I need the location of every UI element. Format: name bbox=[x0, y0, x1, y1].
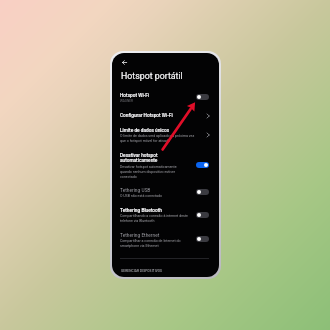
staticText: Tethering Bluetooth bbox=[120, 208, 162, 214]
staticText: Limite de dados únicos bbox=[120, 128, 170, 134]
staticText: Compartilhando a conexão à internet dest… bbox=[120, 214, 188, 223]
staticText: Compartilhar a conexão de Internet do sm… bbox=[120, 239, 181, 248]
staticText: Tethering USB bbox=[120, 188, 151, 194]
button[interactable]: Toggle Desativar hotspot automaticamente bbox=[196, 162, 209, 168]
button[interactable]: Open bbox=[205, 113, 211, 119]
button[interactable] bbox=[112, 150, 219, 168]
staticText: O USB não está conectado bbox=[120, 194, 162, 198]
button[interactable]: Toggle Hotspot Wi-Fi bbox=[196, 94, 209, 100]
button[interactable] bbox=[112, 184, 219, 202]
button[interactable]: Toggle Tethering USB bbox=[196, 189, 209, 195]
button[interactable]: GERENCIAR DISPOSITIVOS bbox=[121, 269, 163, 273]
staticText: Desativar hotspot automaticamente bbox=[120, 153, 158, 163]
button[interactable]: Open bbox=[205, 132, 211, 138]
staticText: Configurar Hotspot Wi-Fi bbox=[120, 113, 173, 119]
button[interactable]: Toggle Tethering Ethernet bbox=[196, 236, 209, 242]
staticText: O limite de dados será aplicado na próxi… bbox=[120, 134, 195, 143]
button[interactable] bbox=[112, 110, 219, 123]
button[interactable] bbox=[112, 90, 219, 108]
staticText: WAGNER bbox=[120, 99, 134, 103]
button[interactable] bbox=[112, 204, 219, 222]
button[interactable] bbox=[112, 125, 219, 143]
staticText: Hotspot Wi-Fi bbox=[120, 93, 150, 99]
staticText: Desativar hotspot automaticamente quando… bbox=[120, 165, 177, 179]
button[interactable]: Back bbox=[117, 55, 131, 69]
staticText: Tethering Ethernet bbox=[120, 233, 160, 239]
button[interactable]: Toggle Tethering Bluetooth bbox=[196, 212, 209, 218]
staticText: Hotspot portátil bbox=[121, 71, 183, 81]
button[interactable] bbox=[112, 229, 219, 247]
